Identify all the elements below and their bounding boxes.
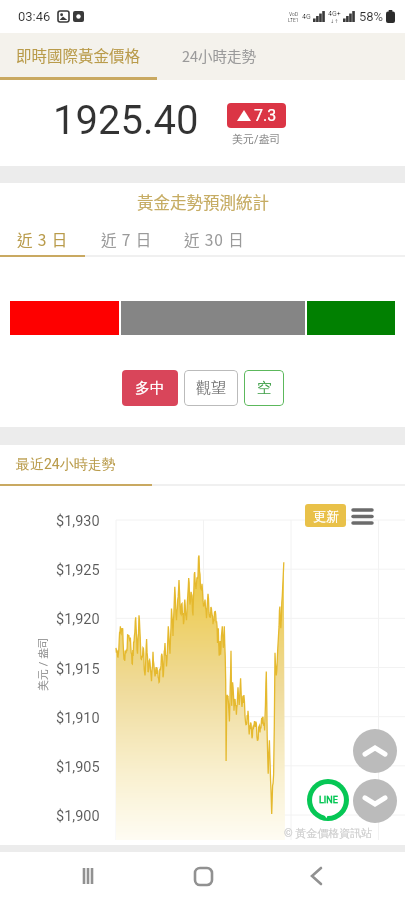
staticText: 4G+: [328, 10, 341, 18]
staticText: 美元/盎司: [232, 132, 281, 146]
staticText: 1925.40: [53, 97, 199, 144]
staticText: $1,910: [56, 710, 100, 727]
button[interactable]: 近 3 日: [0, 225, 85, 253]
button[interactable]: LINE: [307, 779, 349, 821]
button[interactable]: 多中: [122, 370, 178, 406]
staticText: $1,925: [56, 562, 100, 579]
staticText: 美元 / 盎司: [36, 637, 50, 691]
button[interactable]: 即時國際黃金價格: [0, 33, 157, 77]
button[interactable]: Menu: [353, 508, 372, 524]
staticText: 58%: [359, 9, 384, 24]
staticText: LINE: [319, 795, 338, 806]
staticText: $1,915: [56, 661, 100, 678]
button[interactable]: Scroll up: [353, 729, 397, 773]
staticText: 4G: [302, 13, 311, 21]
staticText: LTE1: [288, 17, 299, 23]
button[interactable]: Scroll down: [353, 779, 397, 823]
staticText: © 黃金價格資訊站: [284, 826, 373, 840]
staticText: 最近24小時走勢: [16, 456, 116, 474]
staticText: 03:46: [18, 9, 51, 24]
staticText: 多中: [135, 379, 165, 398]
staticText: 近 3 日: [17, 228, 69, 250]
staticText: 即時國際黃金價格: [16, 44, 141, 66]
staticText: 空: [257, 379, 272, 398]
staticText: $1,905: [56, 759, 100, 776]
staticText: $1,920: [56, 611, 100, 628]
button[interactable]: 觀望: [184, 370, 238, 406]
staticText: $1,900: [56, 808, 100, 825]
staticText: 黃金走勢預測統計: [137, 190, 269, 214]
button[interactable]: 近 7 日: [85, 225, 169, 253]
staticText: 7.3: [254, 106, 277, 125]
staticText: VoD: [289, 11, 299, 17]
button[interactable]: Recents: [65, 852, 113, 900]
button[interactable]: 24小時走勢: [157, 33, 281, 77]
staticText: 24小時走勢: [182, 45, 257, 66]
staticText: ↓↑: [330, 18, 339, 24]
button[interactable]: Back: [292, 852, 340, 900]
button[interactable]: 近 30 日: [169, 225, 259, 253]
staticText: 近 30 日: [184, 228, 245, 250]
button[interactable]: 更新: [305, 504, 346, 527]
button[interactable]: Home: [179, 852, 227, 900]
staticText: 更新: [313, 508, 339, 524]
staticText: 近 7 日: [101, 228, 153, 250]
staticText: $1,930: [56, 513, 100, 530]
staticText: 觀望: [196, 379, 226, 398]
button[interactable]: 空: [244, 370, 284, 406]
